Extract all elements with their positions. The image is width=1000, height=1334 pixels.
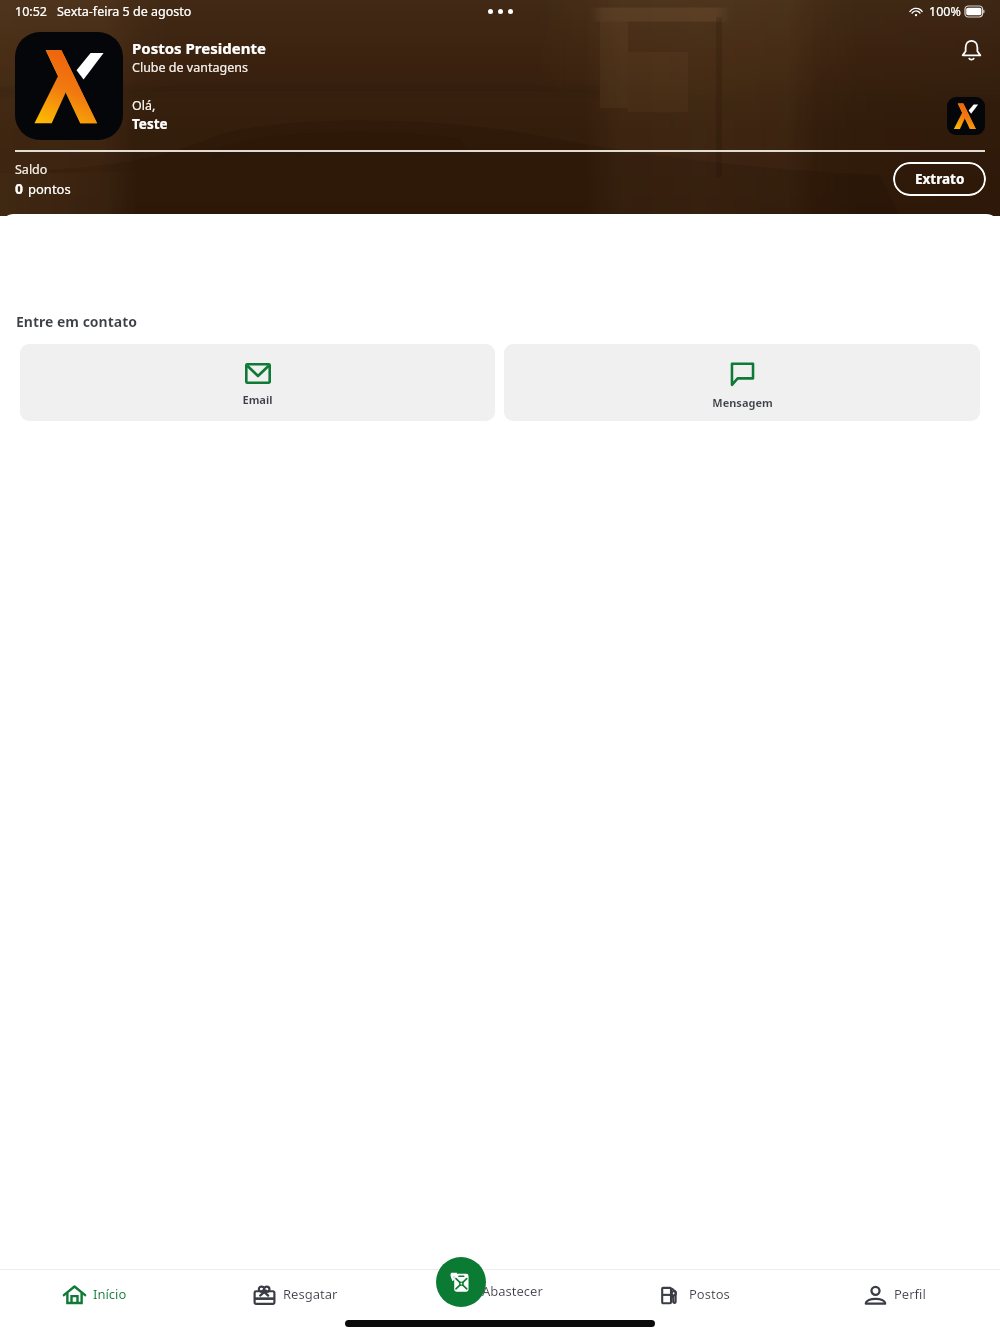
staticText: Entre em contato — [16, 312, 138, 331]
staticText: Abastecer — [482, 1282, 543, 1300]
staticText: 10:52 — [15, 3, 47, 20]
staticText: Resgatar — [283, 1285, 338, 1303]
staticText: Saldo — [15, 161, 48, 178]
staticText: Sexta-feira 5 de agosto — [57, 3, 192, 20]
staticText: Clube de vantagens — [132, 59, 248, 76]
button[interactable]: Postos — [595, 1270, 795, 1318]
staticText: Mensagem — [712, 395, 773, 410]
staticText: Olá, — [132, 97, 156, 114]
button[interactable]: Perfil — [947, 97, 985, 135]
button[interactable]: Extrato — [893, 162, 986, 196]
staticText: Email — [242, 392, 273, 407]
button[interactable]: Início — [0, 1270, 195, 1318]
staticText: Extrato — [915, 170, 965, 188]
staticText: Início — [93, 1285, 127, 1303]
staticText: 100% — [929, 3, 961, 20]
button[interactable]: Perfil — [795, 1270, 995, 1318]
staticText: pontos — [28, 180, 71, 198]
button[interactable]: Email — [20, 344, 495, 421]
staticText: Teste — [132, 115, 168, 133]
staticText: 0 — [15, 179, 24, 198]
button[interactable]: Logo Postos Presidente — [15, 32, 123, 140]
staticText: Postos — [689, 1285, 730, 1303]
button[interactable]: Resgatar — [195, 1270, 395, 1318]
button[interactable]: Notificações — [951, 29, 991, 69]
button[interactable]: Abastecer — [436, 1257, 547, 1307]
button[interactable]: Mensagem — [504, 344, 980, 421]
staticText: Postos Presidente — [132, 38, 266, 58]
staticText: Perfil — [894, 1285, 926, 1303]
